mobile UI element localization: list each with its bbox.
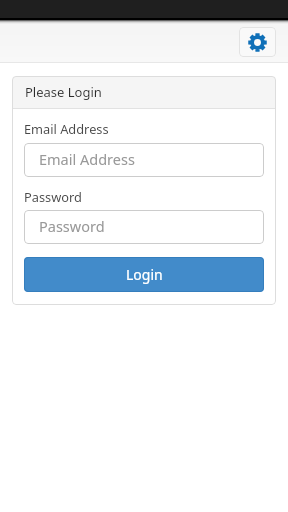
button[interactable]: Settings (239, 27, 276, 57)
staticText: Email Address (39, 149, 135, 169)
staticText: Email Address (24, 120, 109, 137)
button[interactable]: Password (24, 210, 264, 244)
staticText: Login (126, 265, 163, 284)
button[interactable]: Login (24, 257, 264, 292)
staticText: Password (39, 216, 105, 236)
staticText: Password (24, 188, 82, 205)
staticText: Please Login (25, 83, 102, 101)
button[interactable]: Email Address (24, 143, 264, 177)
